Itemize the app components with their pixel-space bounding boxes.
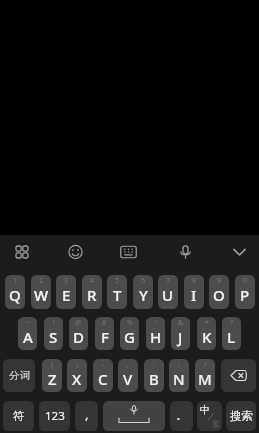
staticText: ' xyxy=(155,318,157,328)
staticText: 6 xyxy=(141,276,146,286)
staticText: - xyxy=(102,360,105,370)
button[interactable]: 9 xyxy=(209,275,229,309)
staticText: ; xyxy=(178,360,180,370)
staticText: H xyxy=(150,327,162,347)
staticText: 0 xyxy=(243,276,248,286)
staticText: R xyxy=(87,285,97,305)
button[interactable]: 4 xyxy=(82,275,102,309)
button[interactable]: 1 xyxy=(5,275,25,309)
staticText: 分词 xyxy=(9,369,30,382)
staticText: 搜索 xyxy=(230,409,253,423)
staticText: D xyxy=(73,327,84,347)
button[interactable]: - xyxy=(93,359,113,392)
staticText: ? xyxy=(230,318,234,328)
staticText: Q xyxy=(9,285,21,305)
button[interactable]: ~ xyxy=(18,317,37,350)
button[interactable]: ' xyxy=(146,317,165,350)
button[interactable] xyxy=(221,359,256,392)
staticText: 3 xyxy=(64,276,69,286)
button[interactable]: 搜索 xyxy=(226,401,256,431)
staticText: S xyxy=(49,327,58,347)
staticText: E xyxy=(62,285,71,305)
button[interactable]: 123 xyxy=(39,401,70,431)
staticText: 9 xyxy=(217,276,222,286)
button[interactable] xyxy=(103,401,165,431)
button[interactable]: ? xyxy=(222,317,241,350)
staticText: Y xyxy=(139,285,148,305)
button[interactable]: # xyxy=(95,317,114,350)
button[interactable]: ; xyxy=(169,359,189,392)
staticText: 5 xyxy=(115,276,120,286)
staticText: G xyxy=(124,327,135,347)
staticText: K xyxy=(202,327,212,347)
staticText: # xyxy=(102,318,107,328)
staticText: P xyxy=(240,285,250,305)
button[interactable]: 。 xyxy=(170,401,193,431)
staticText: _ xyxy=(126,360,130,370)
staticText: ~ xyxy=(25,318,30,328)
staticText: / xyxy=(204,360,207,370)
button[interactable]: 8 xyxy=(184,275,204,309)
staticText: : xyxy=(153,360,155,370)
staticText: O xyxy=(213,285,225,305)
staticText: L xyxy=(227,327,236,347)
staticText: B xyxy=(149,369,159,389)
button[interactable]: & xyxy=(171,317,190,350)
staticText: & xyxy=(178,318,184,328)
staticText: 符 xyxy=(13,409,25,423)
staticText: Z xyxy=(48,369,57,389)
button[interactable]: 6 xyxy=(133,275,153,309)
staticText: U xyxy=(162,285,174,305)
staticText: X xyxy=(72,369,82,389)
button[interactable]: ) xyxy=(67,359,87,392)
staticText: 123 xyxy=(45,408,65,424)
staticText: 8 xyxy=(192,276,197,286)
staticText: I xyxy=(191,285,197,305)
staticText: A xyxy=(23,327,33,347)
staticText: * xyxy=(205,318,209,328)
button[interactable]: , xyxy=(75,401,98,431)
staticText: 2 xyxy=(39,276,44,286)
staticText: ) xyxy=(76,360,79,370)
button[interactable]: 7 xyxy=(158,275,178,309)
staticText: N xyxy=(173,369,185,389)
button[interactable]: * xyxy=(197,317,216,350)
button[interactable]: _ xyxy=(118,359,138,392)
staticText: ! xyxy=(53,318,55,328)
staticText: @ xyxy=(75,318,82,328)
staticText: C xyxy=(98,369,108,389)
staticText: J xyxy=(178,327,183,347)
button[interactable]: @ xyxy=(69,317,88,350)
staticText: , xyxy=(85,405,89,423)
staticText: V xyxy=(123,369,133,389)
staticText: T xyxy=(113,285,122,305)
button[interactable]: ! xyxy=(44,317,63,350)
staticText: 4 xyxy=(90,276,95,286)
button[interactable]: 符 xyxy=(3,401,34,431)
staticText: ( xyxy=(51,360,54,370)
button[interactable]: 5 xyxy=(107,275,127,309)
button[interactable]: : xyxy=(144,359,164,392)
staticText: W xyxy=(34,285,49,305)
button[interactable]: 0 xyxy=(235,275,255,309)
button[interactable]: ( xyxy=(42,359,62,392)
staticText: 中 xyxy=(200,403,210,416)
staticText: M xyxy=(198,369,212,389)
staticText: % xyxy=(127,318,133,328)
staticText: 1 xyxy=(13,276,18,286)
staticText: 英 xyxy=(212,419,220,429)
button[interactable]: 3 xyxy=(56,275,76,309)
staticText: 。 xyxy=(176,408,187,422)
staticText: 7 xyxy=(166,276,171,286)
button[interactable]: % xyxy=(120,317,139,350)
button[interactable]: 2 xyxy=(31,275,51,309)
button[interactable]: 中 xyxy=(197,401,222,431)
staticText: F xyxy=(101,327,109,347)
button[interactable]: / xyxy=(195,359,215,392)
button[interactable]: 分词 xyxy=(3,359,35,392)
